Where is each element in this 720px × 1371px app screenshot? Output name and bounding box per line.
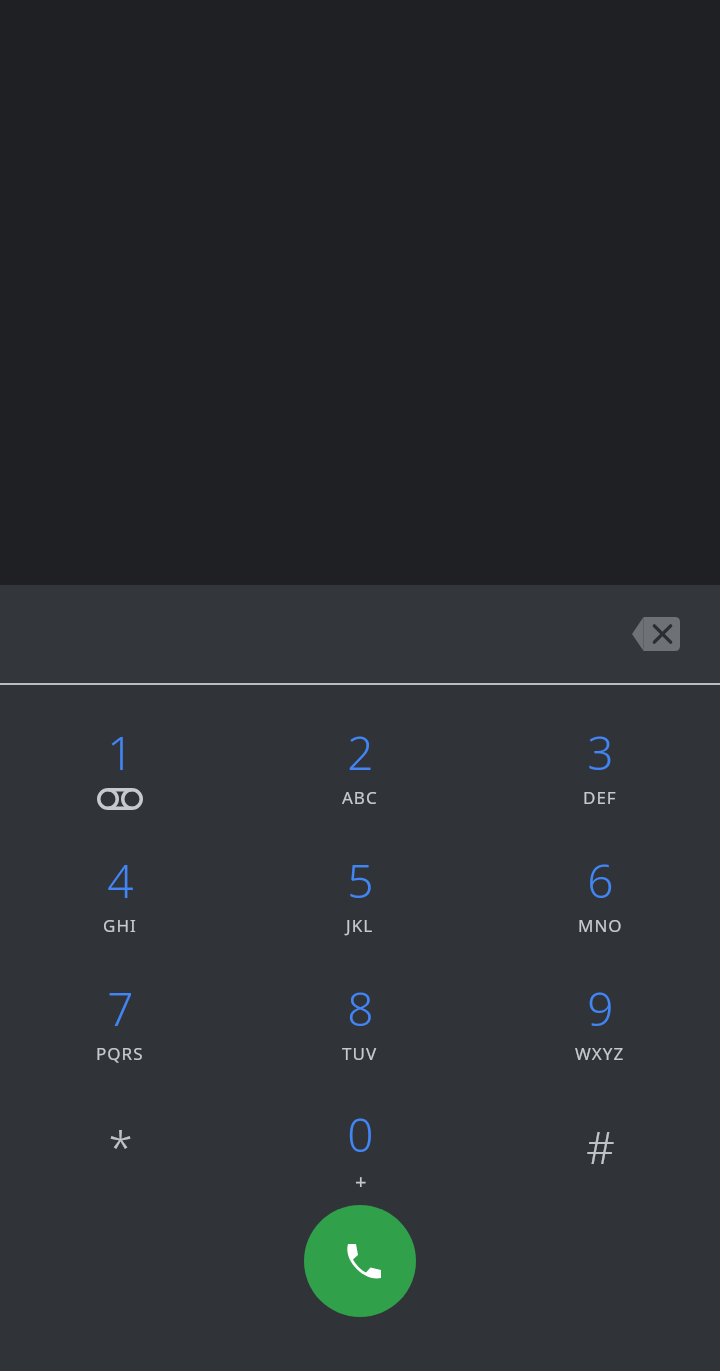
staticText: PQRS (96, 1042, 144, 1065)
button[interactable]: 2 (240, 701, 480, 829)
staticText: MNO (578, 914, 623, 937)
staticText: ABC (342, 786, 378, 809)
staticText: WXYZ (575, 1042, 625, 1065)
staticText: 6 (587, 849, 614, 912)
button[interactable]: 0 (240, 1085, 480, 1213)
button[interactable]: 4 (0, 829, 240, 957)
button[interactable]: Call (304, 1205, 416, 1317)
staticText: GHI (103, 914, 137, 937)
staticText: 1 (107, 721, 134, 784)
staticText: 4 (107, 849, 134, 912)
button[interactable]: 8 (240, 957, 480, 1085)
button[interactable]: * (0, 1085, 240, 1213)
staticText: JKL (346, 914, 374, 937)
staticText: TUV (342, 1042, 378, 1065)
staticText: # (586, 1117, 615, 1177)
staticText: + (355, 1168, 367, 1195)
button[interactable]: 7 (0, 957, 240, 1085)
button[interactable]: 5 (240, 829, 480, 957)
button[interactable]: 9 (480, 957, 720, 1085)
staticText: 7 (107, 977, 134, 1040)
button[interactable]: 6 (480, 829, 720, 957)
staticText: 8 (347, 977, 374, 1040)
button[interactable]: # (480, 1085, 720, 1213)
button[interactable]: 3 (480, 701, 720, 829)
staticText: 3 (587, 721, 614, 784)
staticText: * (108, 1117, 133, 1177)
staticText: 9 (587, 977, 614, 1040)
staticText: 5 (347, 849, 374, 912)
button[interactable]: Delete (624, 609, 688, 659)
staticText: DEF (583, 786, 617, 809)
staticText: 0 (347, 1103, 374, 1166)
staticText: 2 (347, 721, 374, 784)
button[interactable]: 1 (0, 701, 240, 829)
